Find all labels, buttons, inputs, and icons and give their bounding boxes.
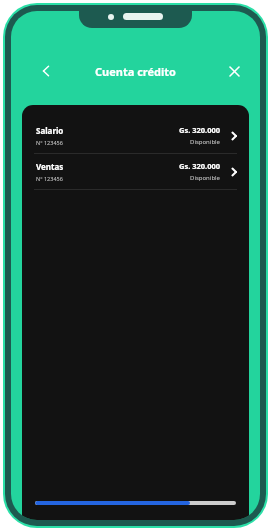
staticText: Gs. 320.000 — [179, 161, 221, 171]
button[interactable]: Ventas — [22, 154, 249, 189]
staticText: N° 123456 — [36, 139, 63, 146]
staticText: Cuenta crédito — [11, 64, 260, 79]
staticText: N° 123456 — [36, 175, 63, 182]
staticText: Gs. 320.000 — [179, 125, 221, 135]
button[interactable]: Back — [33, 58, 59, 84]
staticText: Salario — [36, 125, 64, 136]
staticText: Disponible — [190, 138, 221, 146]
staticText: Ventas — [36, 161, 64, 172]
button[interactable]: Salario — [22, 118, 249, 153]
button[interactable]: Close — [221, 58, 247, 84]
staticText: Disponible — [190, 174, 221, 182]
